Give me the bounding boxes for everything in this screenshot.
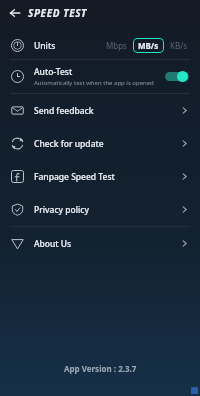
button[interactable]: Privacy policy [0,193,200,226]
button[interactable]: MB/s [133,38,164,53]
staticText: Automatically test when the app is opene… [34,79,154,87]
staticText: SPEED TEST [28,6,87,20]
button[interactable]: Fanpage Speed Test [0,160,200,193]
staticText: Units [34,40,56,52]
button[interactable]: Auto-Test [0,60,200,93]
staticText: About Us [34,238,72,250]
button[interactable]: Check for update [0,127,200,160]
staticText: Mbps [106,40,127,51]
button[interactable]: Units [0,32,200,59]
staticText: Privacy policy [34,204,90,216]
button[interactable]: About Us [0,227,200,260]
staticText: App Version : 2.3.7 [64,363,137,374]
button[interactable]: Send feedback [0,94,200,127]
button[interactable]: Auto-Test toggle [165,70,189,83]
button[interactable]: Mbps [104,38,129,53]
button[interactable]: Back [5,3,25,23]
staticText: Auto-Test [34,66,73,78]
staticText: MB/s [138,40,159,51]
staticText: Send feedback [34,105,94,117]
staticText: KB/s [170,40,187,51]
staticText: Check for update [34,138,104,150]
staticText: Fanpage Speed Test [34,171,115,183]
button[interactable]: KB/s [168,38,189,53]
